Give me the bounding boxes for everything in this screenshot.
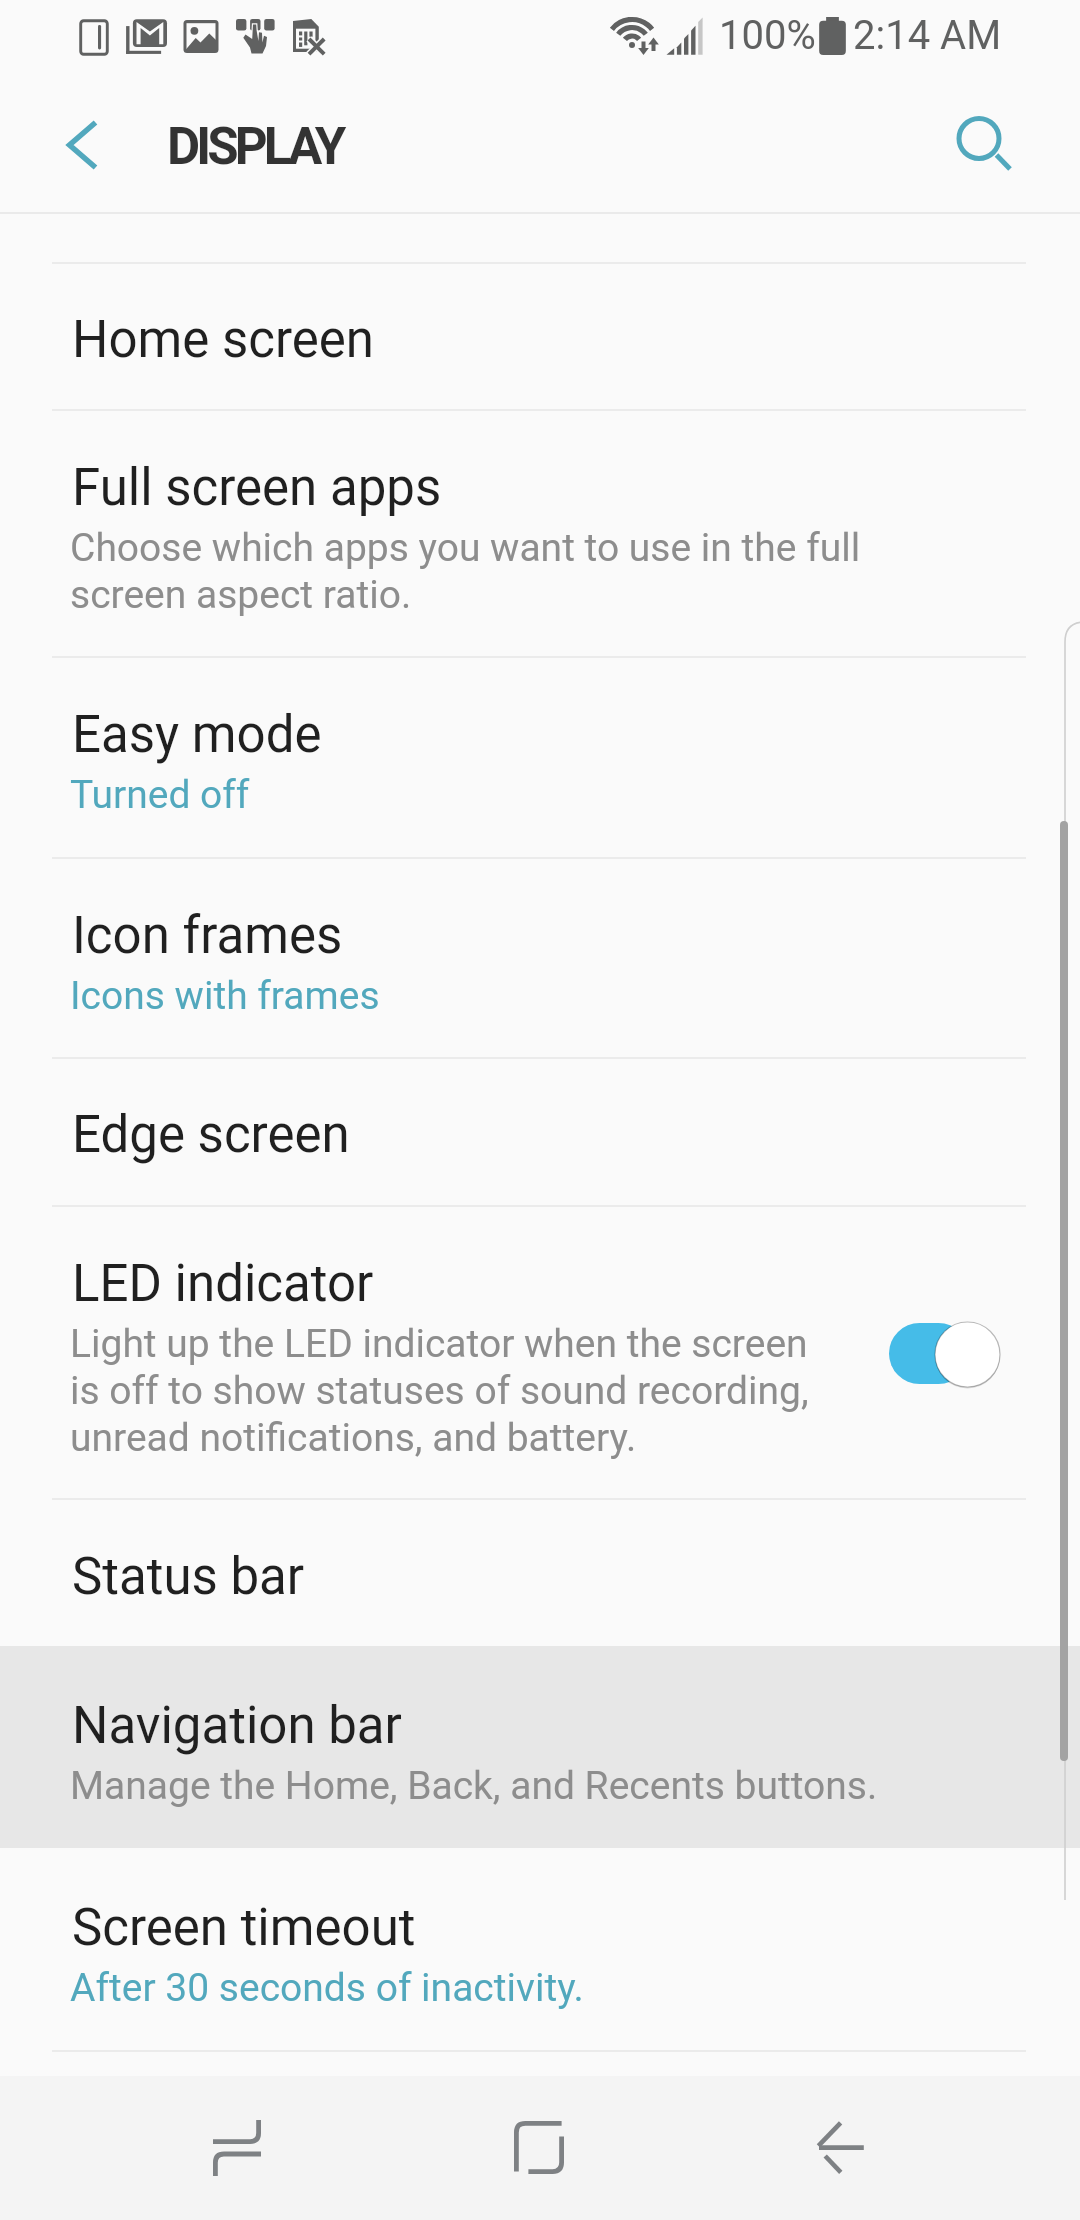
staticText: LED indicator bbox=[72, 1254, 374, 1314]
staticText: Easy mode bbox=[72, 705, 322, 765]
staticText: Choose which apps you want to use in the… bbox=[70, 525, 861, 618]
button[interactable] bbox=[0, 1646, 1080, 1848]
button[interactable] bbox=[0, 262, 1080, 409]
button[interactable]: Back bbox=[781, 2088, 901, 2208]
staticText: After 30 seconds of inactivity. bbox=[70, 1965, 584, 2011]
staticText: Screen timeout bbox=[72, 1898, 416, 1958]
staticText: Icons with frames bbox=[70, 973, 380, 1019]
button[interactable]: Recents bbox=[176, 2088, 296, 2208]
staticText: Home screen bbox=[72, 310, 374, 370]
button[interactable] bbox=[0, 409, 1080, 656]
staticText: Status bar bbox=[72, 1547, 305, 1607]
button[interactable]: Search bbox=[933, 92, 1037, 196]
staticText: 2:14 AM bbox=[853, 12, 1002, 59]
staticText: 100% bbox=[719, 12, 816, 59]
staticText: Light up the LED indicator when the scre… bbox=[70, 1321, 809, 1461]
button[interactable] bbox=[0, 656, 1080, 857]
staticText: Icon frames bbox=[72, 906, 343, 966]
button[interactable]: Navigate up bbox=[33, 95, 133, 195]
button[interactable] bbox=[0, 1498, 1080, 1646]
button[interactable] bbox=[0, 857, 1080, 1057]
button[interactable] bbox=[0, 1057, 1080, 1205]
button[interactable]: Home bbox=[478, 2088, 598, 2208]
button[interactable]: LED indicator toggle bbox=[872, 1304, 1016, 1404]
button[interactable] bbox=[0, 1205, 1080, 1498]
button[interactable] bbox=[0, 1848, 1080, 2050]
staticText: Turned off bbox=[70, 772, 250, 818]
staticText: Edge screen bbox=[72, 1105, 350, 1165]
staticText: DISPLAY bbox=[167, 117, 343, 177]
staticText: Manage the Home, Back, and Recents butto… bbox=[70, 1763, 878, 1809]
staticText: Navigation bar bbox=[72, 1696, 402, 1756]
staticText: Full screen apps bbox=[72, 458, 442, 518]
